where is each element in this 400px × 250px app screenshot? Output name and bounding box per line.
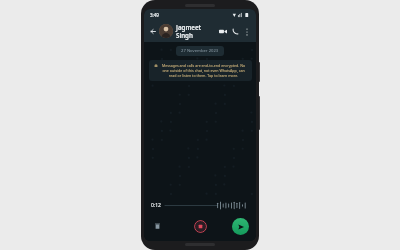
staticText: 27 November 2023 [181, 48, 219, 54]
staticText: Jagmeet Singh [176, 23, 217, 39]
staticText: 3:49 [150, 12, 159, 18]
staticText: 0:12 [151, 202, 161, 209]
button[interactable]: Stop recording [194, 220, 207, 233]
button[interactable]: Voice call [229, 25, 241, 37]
button[interactable]: Delete recording [151, 220, 163, 232]
button[interactable]: Contact photo [159, 24, 173, 38]
button[interactable]: Back [148, 26, 158, 36]
button[interactable]: Video call [217, 25, 229, 37]
button[interactable]: Send [232, 218, 249, 235]
button[interactable]: More options [241, 26, 252, 37]
staticText: Messages and calls are end-to-end encryp… [160, 63, 247, 78]
button[interactable]: Jagmeet Singh [176, 23, 217, 39]
button[interactable]: Messages and calls are end-to-end encryp… [149, 60, 252, 81]
